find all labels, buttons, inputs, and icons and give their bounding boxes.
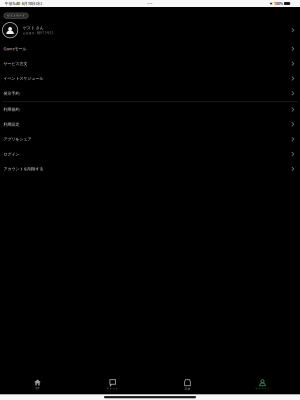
staticText: 100% <box>274 1 283 6</box>
staticText: サービス注文 <box>4 61 28 66</box>
button[interactable]: 利用規約 <box>0 102 300 117</box>
staticText: 午前5:40 <box>5 1 20 6</box>
button[interactable]: ゲスト さん <box>0 21 300 39</box>
button[interactable]: ログイン <box>0 147 300 161</box>
staticText: Gameモール <box>4 46 27 51</box>
button[interactable]: ゲストモード <box>4 13 28 18</box>
staticText: ログイン <box>4 152 20 156</box>
staticText: 発注予約 <box>4 91 20 96</box>
staticText: 店舗 <box>184 387 190 390</box>
button[interactable]: 利用設定 <box>0 117 300 132</box>
staticText: ゲスト さん <box>23 25 44 30</box>
button[interactable]: チャット <box>75 376 150 394</box>
button[interactable]: TOP <box>0 376 75 394</box>
button[interactable]: 発注予約 <box>0 86 300 101</box>
button[interactable]: サービス注文 <box>0 56 300 71</box>
staticText: マイページ <box>255 387 270 390</box>
staticText: アカウントを削除する <box>4 166 44 171</box>
button[interactable]: マイページ <box>225 376 300 394</box>
staticText: アプリをシェア <box>4 137 32 142</box>
button[interactable]: イベントスケジュール <box>0 71 300 86</box>
staticText: 利用規約 <box>4 107 20 112</box>
staticText: 会員番号: NBY13*655 <box>23 31 54 35</box>
staticText: チャット <box>106 387 118 390</box>
staticText: 6月10日(水) <box>22 1 42 6</box>
button[interactable]: アカウントを削除する <box>0 161 300 176</box>
button[interactable]: 店舗 <box>150 376 225 394</box>
button[interactable]: アプリをシェア <box>0 132 300 147</box>
staticText: イベントスケジュール <box>4 76 44 81</box>
staticText: ゲストモード <box>7 14 25 17</box>
staticText: TOP <box>35 386 40 390</box>
button[interactable]: Gameモール <box>0 41 300 56</box>
staticText: 利用設定 <box>4 122 20 127</box>
